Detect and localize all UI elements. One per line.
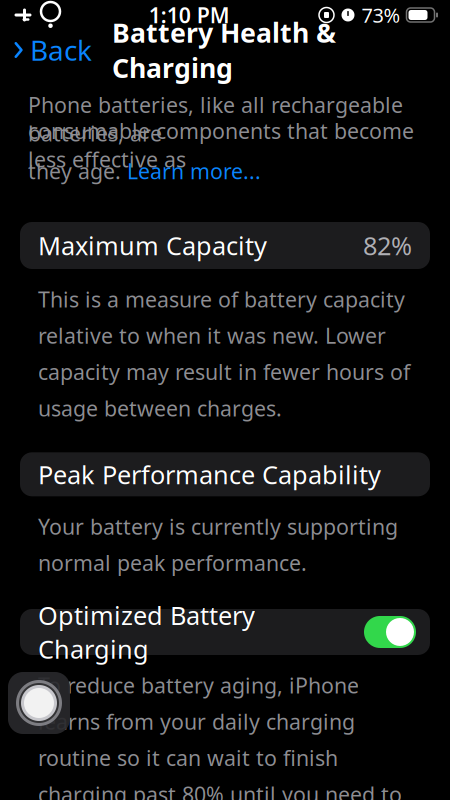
staticText: they age. bbox=[28, 157, 127, 185]
staticText: 1:10 PM bbox=[149, 1, 230, 29]
staticText: Maximum Capacity bbox=[38, 229, 267, 262]
staticText: This is a measure of battery capacity re… bbox=[38, 285, 410, 422]
button[interactable]: Maximum Capacity bbox=[20, 222, 430, 269]
button[interactable]: Peak Performance Capability bbox=[20, 452, 430, 496]
staticText: Peak Performance Capability bbox=[38, 457, 381, 491]
staticText: To reduce battery aging, iPhone learns f… bbox=[38, 671, 402, 800]
staticText: Battery Health & Charging bbox=[112, 15, 336, 85]
staticText: Back bbox=[30, 31, 92, 69]
button[interactable]: Optimized Battery Charging bbox=[20, 609, 430, 655]
staticText: Learn more... bbox=[127, 157, 261, 185]
button[interactable]: Back bbox=[0, 25, 92, 75]
staticText: 73% bbox=[361, 2, 400, 28]
staticText: consumable components that become less e… bbox=[28, 117, 414, 173]
staticText: Your battery is currently supporting nor… bbox=[38, 512, 398, 577]
button[interactable]: AssistiveTouch bbox=[8, 672, 70, 734]
staticText: Optimized Battery Charging bbox=[38, 598, 255, 666]
button[interactable]: Learn more... bbox=[127, 157, 261, 185]
staticText: 82% bbox=[363, 229, 412, 262]
staticText: Phone batteries, like all rechargeable b… bbox=[28, 91, 403, 147]
